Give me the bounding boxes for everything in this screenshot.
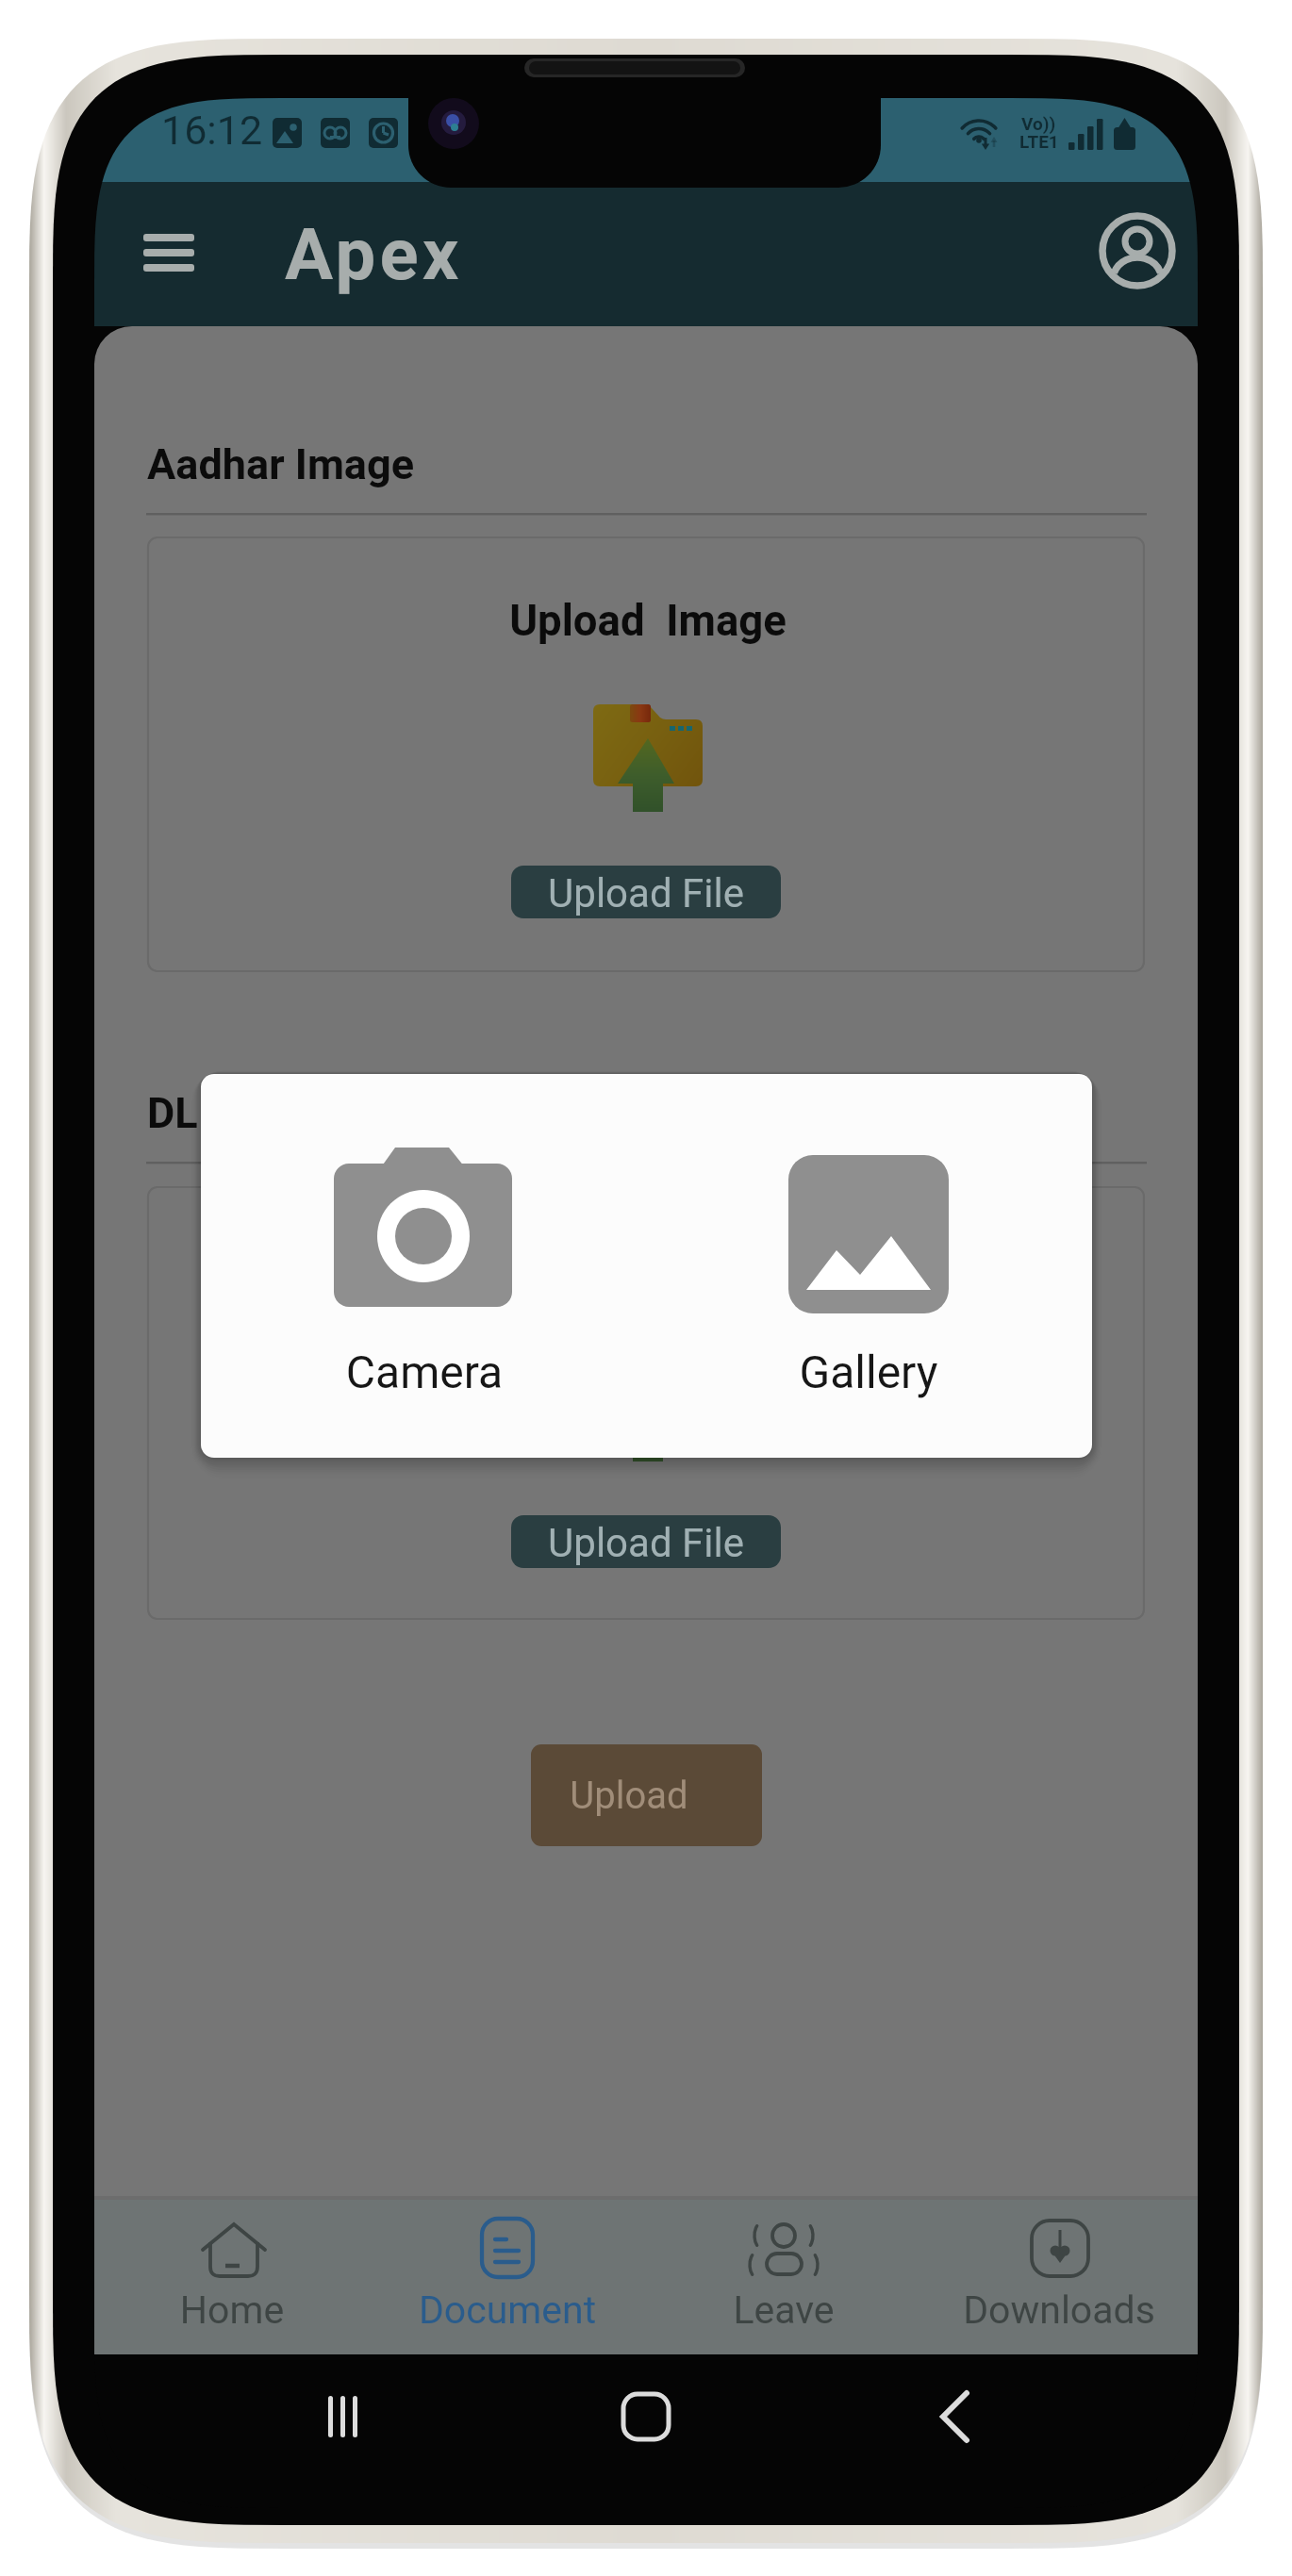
staticText: Upload Image [96, 1246, 1198, 1296]
button[interactable] [921, 2198, 1197, 2354]
button[interactable] [370, 2198, 645, 2354]
staticText: Upload Image [96, 596, 1198, 646]
staticText: 16:12 [161, 107, 263, 154]
staticText: Apex [285, 212, 463, 296]
staticText: DL [147, 1088, 198, 1138]
button[interactable]: Open navigation menu [132, 215, 207, 290]
staticText: Vo)) [1021, 113, 1056, 134]
staticText: Upload File [94, 870, 1198, 916]
button[interactable] [531, 1744, 762, 1846]
button[interactable]: Account [1100, 213, 1175, 289]
staticText: Leave [652, 2287, 916, 2333]
button[interactable] [646, 2198, 921, 2354]
staticText: Camera [330, 1346, 519, 1398]
staticText: Aadhar Image [147, 439, 415, 489]
staticText: LTE1 [1019, 131, 1059, 152]
button[interactable] [511, 1515, 781, 1568]
staticText: Upload [94, 1774, 1181, 1818]
button[interactable] [236, 1122, 613, 1405]
staticText: Upload File [94, 1520, 1198, 1566]
button[interactable] [511, 866, 781, 918]
staticText: Downloads [927, 2287, 1191, 2333]
staticText: Document [375, 2287, 639, 2333]
staticText: Home [100, 2287, 364, 2333]
button[interactable] [94, 2198, 370, 2354]
staticText: Gallery [774, 1346, 963, 1398]
button[interactable] [679, 1122, 1056, 1405]
